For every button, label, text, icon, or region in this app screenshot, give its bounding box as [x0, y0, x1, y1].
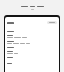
button[interactable] — [7, 56, 57, 59]
button[interactable]: Action — [7, 20, 57, 25]
button[interactable]: Action — [47, 21, 57, 24]
button[interactable] — [7, 50, 57, 55]
button[interactable] — [7, 30, 57, 33]
button[interactable] — [7, 34, 57, 39]
button[interactable] — [7, 62, 57, 65]
button[interactable] — [7, 40, 57, 45]
button[interactable] — [7, 46, 57, 49]
